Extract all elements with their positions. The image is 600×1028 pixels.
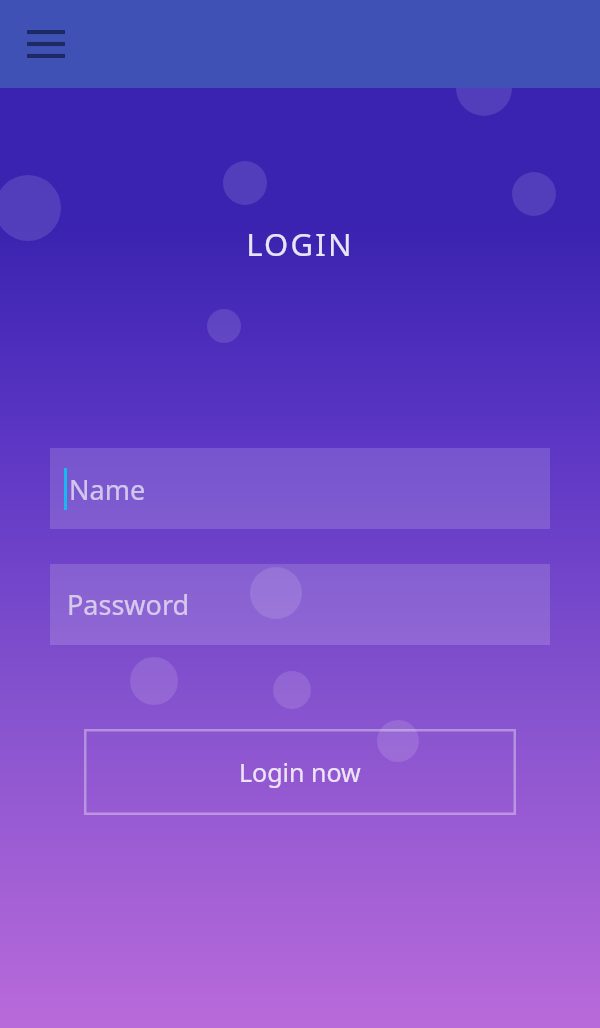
staticText: Login now [239,755,361,789]
button[interactable]: Password [50,564,550,645]
button[interactable]: Open navigation menu [14,12,78,76]
staticText: LOGIN [0,223,600,265]
staticText: Name [69,471,146,508]
button[interactable]: Name [50,448,550,529]
staticText: Password [67,586,190,623]
button[interactable]: Login now [84,729,516,815]
